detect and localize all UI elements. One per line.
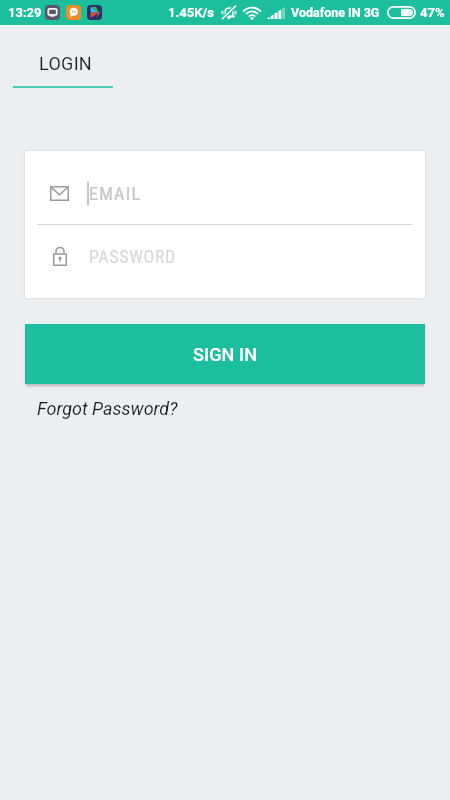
button[interactable]: LOGIN: [0, 26, 126, 86]
staticText: LOGIN: [39, 53, 93, 74]
button[interactable]: Email: [25, 151, 425, 224]
other: Email: [50, 186, 69, 201]
button[interactable]: SIGN IN: [25, 324, 425, 384]
other: Battery 47 percent: [387, 6, 416, 19]
staticText: 13:29: [8, 5, 42, 20]
other: Password: [53, 247, 67, 266]
staticText: 1.45K/s: [168, 5, 214, 20]
staticText: EMAIL: [89, 183, 142, 204]
staticText: SIGN IN: [193, 344, 258, 365]
button[interactable]: Password: [25, 225, 425, 298]
other: Mobile signal: [267, 7, 285, 19]
staticText: Vodafone IN 3G: [291, 5, 380, 20]
staticText: PASSWORD: [89, 246, 176, 267]
button[interactable]: Forgot Password?: [37, 398, 178, 419]
other: Wi-Fi connected: [243, 6, 261, 19]
staticText: 47%: [420, 5, 445, 20]
staticText: Forgot Password?: [37, 398, 178, 419]
other: Sound muted: [221, 5, 237, 20]
